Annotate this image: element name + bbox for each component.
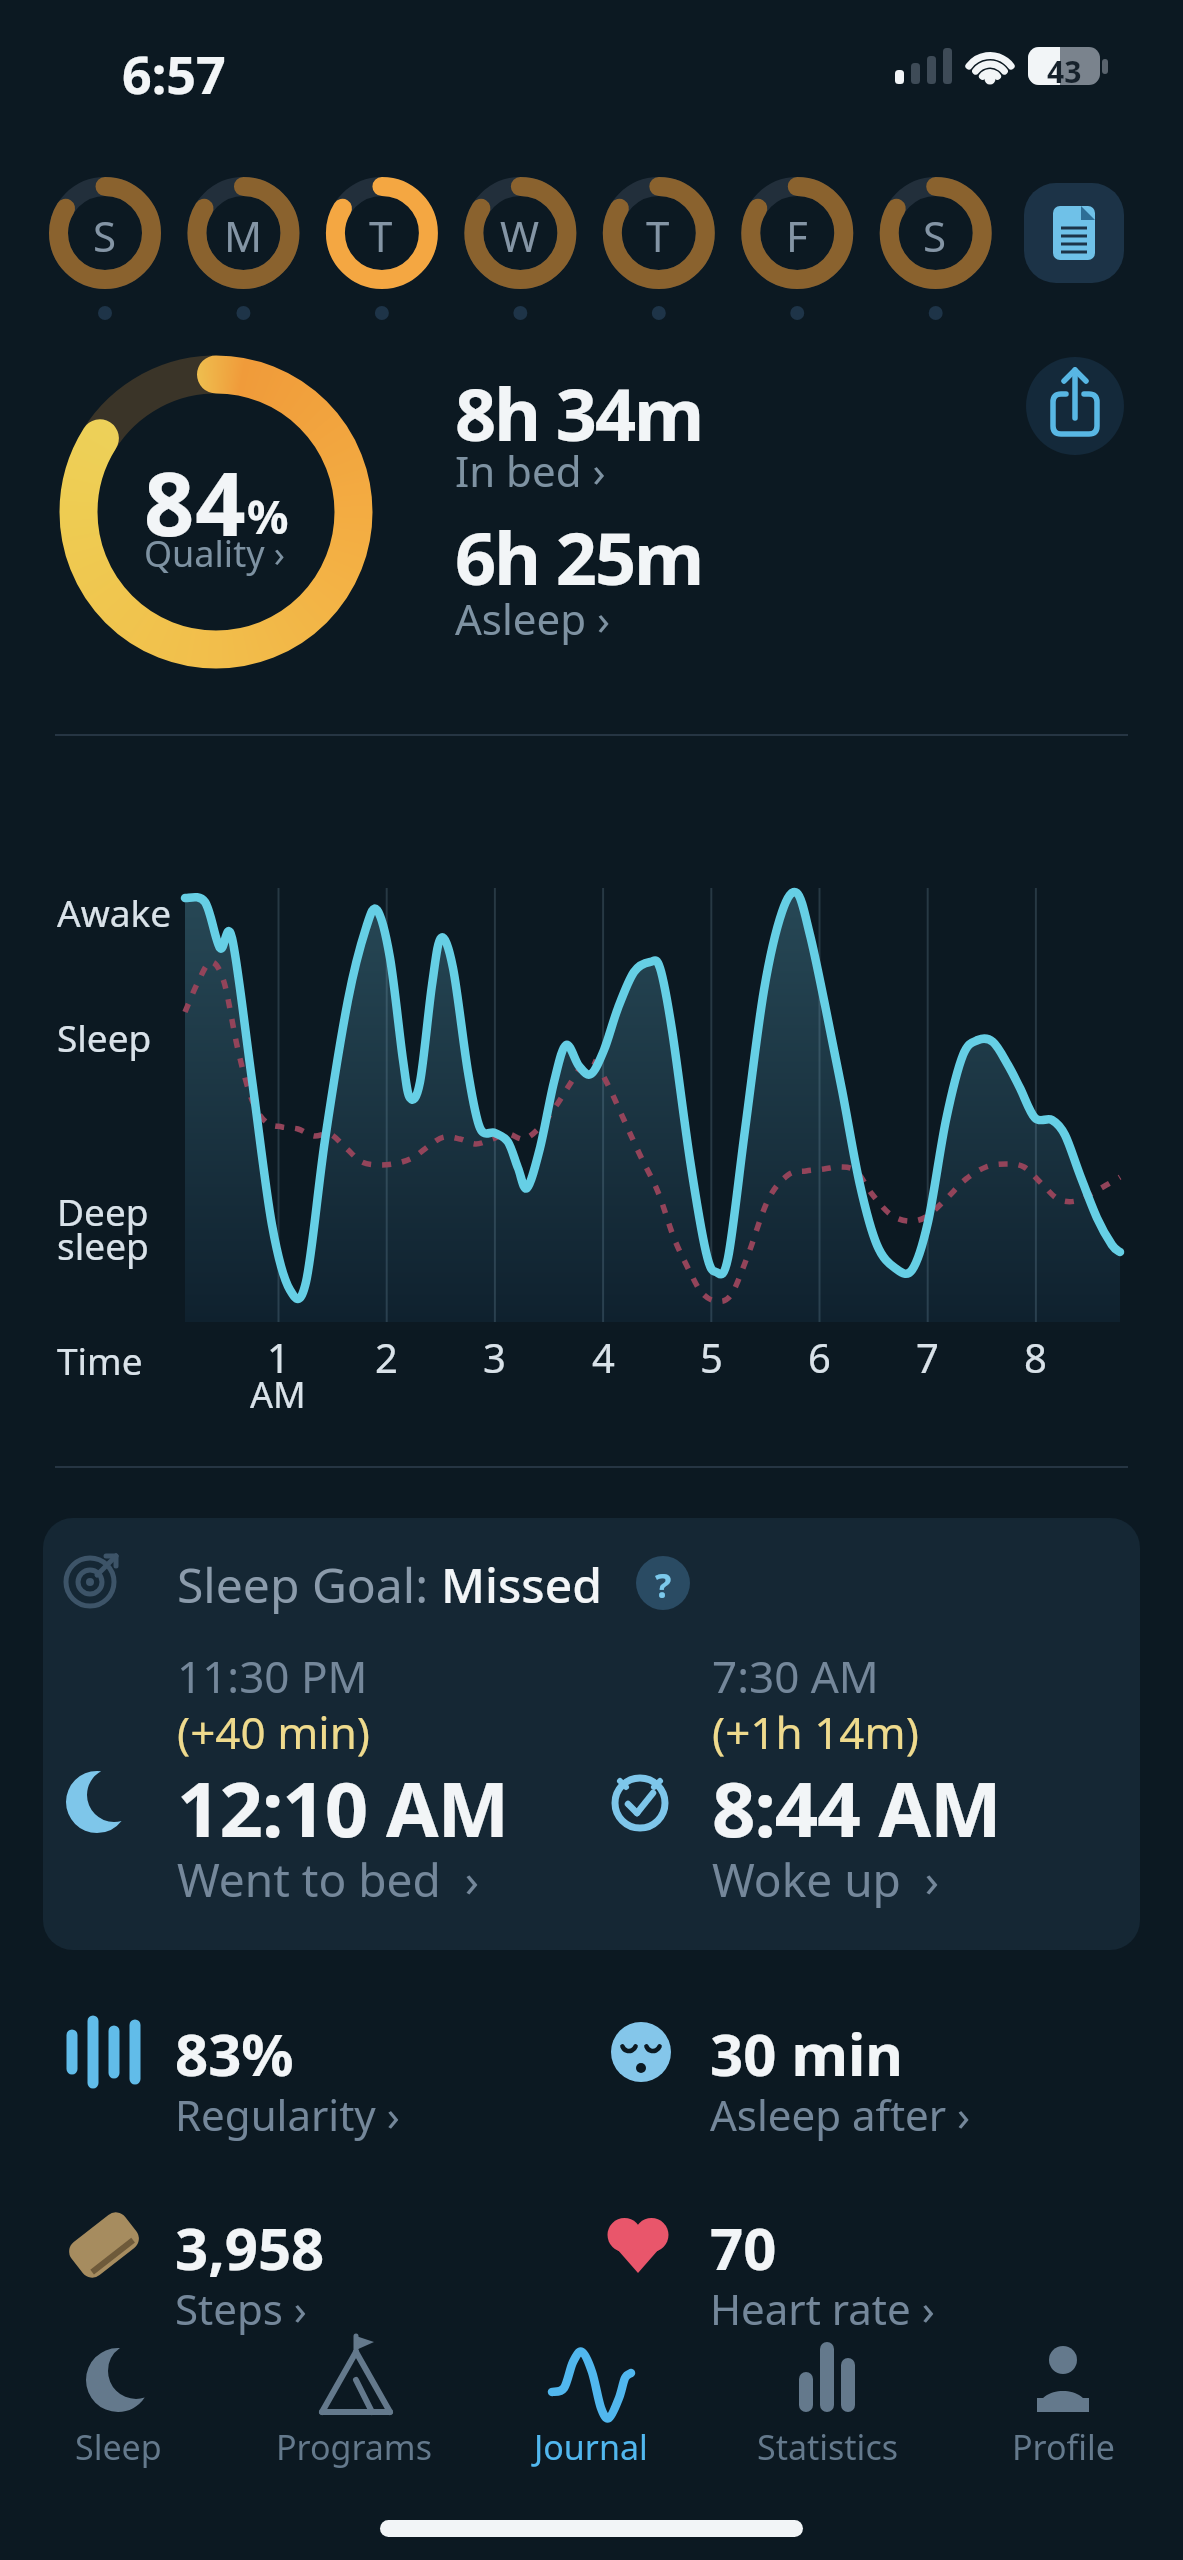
- staticText: Sleep: [75, 2424, 162, 2470]
- staticText: 1: [267, 1330, 290, 1384]
- button[interactable]: [23, 2336, 213, 2476]
- staticText: 84: [144, 442, 247, 562]
- staticText: 6: [808, 1330, 831, 1384]
- button[interactable]: [326, 177, 438, 289]
- staticText: 3,958: [175, 2208, 325, 2287]
- button[interactable]: [440, 510, 770, 640]
- staticText: 8:44 AM: [712, 1756, 1001, 1860]
- button[interactable]: [732, 2336, 922, 2476]
- button[interactable]: [968, 2336, 1158, 2476]
- button[interactable]: [440, 360, 770, 490]
- staticText: Asleep after ›: [710, 2086, 971, 2143]
- staticText: Regularity ›: [175, 2086, 400, 2143]
- staticText: S: [93, 207, 117, 264]
- staticText: 7: [916, 1330, 939, 1384]
- staticText: 2: [375, 1330, 398, 1384]
- button[interactable]: [55, 2195, 455, 2325]
- button[interactable]: [1026, 357, 1124, 455]
- staticText: Time: [57, 1335, 143, 1385]
- staticText: Asleep ›: [455, 590, 610, 647]
- staticText: W: [500, 207, 540, 264]
- staticText: M: [224, 207, 263, 264]
- staticText: AM: [250, 1370, 306, 1419]
- button[interactable]: [595, 2000, 995, 2130]
- button[interactable]: [880, 177, 992, 289]
- staticText: 6h 25m: [455, 508, 703, 606]
- button[interactable]: [496, 2336, 686, 2476]
- staticText: Awake: [57, 887, 172, 937]
- staticText: 11:30 PM: [177, 1646, 368, 1706]
- staticText: (+40 min): [177, 1702, 371, 1762]
- button[interactable]: [464, 177, 576, 289]
- staticText: F: [786, 207, 808, 264]
- staticText: Heart rate ›: [710, 2280, 935, 2337]
- staticText: 83%: [175, 2014, 294, 2093]
- staticText: ?: [655, 1562, 672, 1608]
- staticText: 30 min: [710, 2014, 904, 2093]
- button[interactable]: [1024, 183, 1124, 283]
- staticText: Steps ›: [175, 2280, 307, 2337]
- button[interactable]: [60, 1630, 540, 1920]
- staticText: Profile: [1012, 2424, 1115, 2470]
- staticText: 5: [700, 1330, 723, 1384]
- staticText: T: [646, 207, 670, 264]
- button[interactable]: [60, 356, 372, 668]
- staticText: 8: [1024, 1330, 1047, 1384]
- staticText: 12:10 AM: [177, 1756, 509, 1860]
- staticText: 43: [1047, 51, 1082, 92]
- button[interactable]: [600, 1630, 1080, 1920]
- staticText: T: [369, 207, 393, 264]
- staticText: 6:57: [122, 38, 226, 109]
- staticText: 3: [483, 1330, 506, 1384]
- staticText: 7:30 AM: [712, 1646, 879, 1706]
- button[interactable]: [55, 2000, 455, 2130]
- staticText: (+1h 14m): [712, 1702, 919, 1762]
- staticText: Missed: [441, 1552, 602, 1617]
- staticText: In bed ›: [455, 442, 606, 499]
- button[interactable]: [259, 2336, 449, 2476]
- button[interactable]: [43, 1518, 1140, 1950]
- button[interactable]: [603, 177, 715, 289]
- staticText: Went to bed ›: [177, 1848, 479, 1911]
- staticText: Sleep: [57, 1012, 152, 1062]
- staticText: 8h 34m: [455, 364, 703, 462]
- button[interactable]: [595, 2195, 995, 2325]
- staticText: %: [247, 485, 289, 548]
- button[interactable]: [741, 177, 853, 289]
- staticText: Quality ›: [144, 529, 286, 578]
- staticText: S: [923, 207, 947, 264]
- staticText: Journal: [534, 2424, 648, 2470]
- staticText: Sleep Goal:: [177, 1552, 441, 1617]
- staticText: 70: [710, 2208, 777, 2287]
- staticText: Woke up ›: [712, 1848, 940, 1911]
- staticText: Deep: [57, 1186, 149, 1236]
- staticText: Programs: [276, 2424, 432, 2470]
- button[interactable]: [187, 177, 299, 289]
- staticText: 4: [592, 1330, 615, 1384]
- staticText: Statistics: [757, 2424, 898, 2470]
- staticText: sleep: [57, 1220, 149, 1270]
- button[interactable]: [49, 177, 161, 289]
